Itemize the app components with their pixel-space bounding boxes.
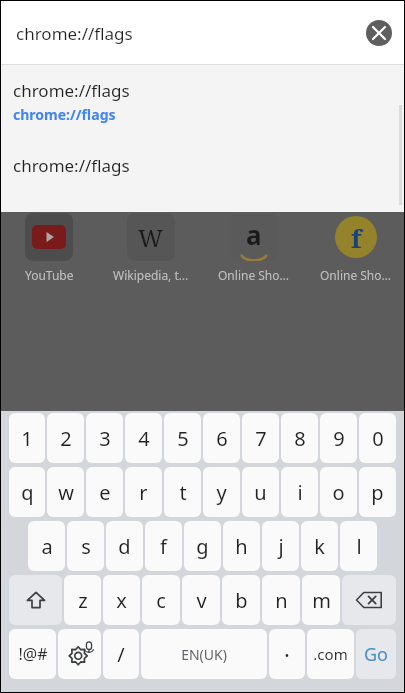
button[interactable]: s	[67, 521, 104, 571]
staticText: a	[246, 217, 262, 252]
staticText: 1	[21, 425, 33, 452]
button[interactable]: g	[184, 521, 221, 571]
button[interactable]: r	[125, 467, 162, 517]
staticText: b	[235, 587, 248, 614]
staticText: x	[116, 587, 127, 614]
staticText: 6	[216, 425, 228, 452]
staticText: !@#	[18, 643, 48, 665]
button[interactable]: w	[47, 467, 84, 517]
button[interactable]: 5	[164, 413, 201, 463]
button[interactable]: b	[222, 575, 260, 625]
button[interactable]: !@#	[9, 629, 56, 679]
staticText: c	[156, 587, 166, 614]
button[interactable]: c	[142, 575, 180, 625]
button[interactable]: 3	[86, 413, 123, 463]
button[interactable]: 0	[359, 413, 396, 463]
button[interactable]: EN(UK)	[141, 629, 267, 679]
staticText: n	[275, 587, 288, 614]
button[interactable]: y	[203, 467, 240, 517]
button[interactable]: 4	[125, 413, 162, 463]
staticText: y	[216, 479, 227, 506]
button[interactable]: o	[320, 467, 357, 517]
staticText: s	[81, 533, 91, 560]
button[interactable]: Go	[356, 629, 396, 679]
staticText: chrome://flags	[13, 154, 130, 177]
button[interactable]: Backspace	[342, 575, 396, 625]
button[interactable]: v	[182, 575, 220, 625]
staticText: h	[235, 533, 248, 560]
staticText: ·	[284, 639, 290, 669]
button[interactable]: Settings and voice input	[58, 629, 101, 679]
button[interactable]: m	[302, 575, 340, 625]
button[interactable]: chrome://flags	[1, 65, 404, 135]
staticText: a	[41, 533, 53, 560]
button[interactable]: x	[103, 575, 140, 625]
staticText: 8	[294, 425, 306, 452]
staticText: 4	[138, 425, 150, 452]
button[interactable]: 8	[281, 413, 318, 463]
staticText: w	[58, 479, 74, 506]
button[interactable]: l	[340, 521, 377, 571]
button[interactable]: /	[103, 629, 139, 679]
button[interactable]: q	[9, 467, 45, 517]
staticText: 5	[177, 425, 189, 452]
button[interactable]: e	[86, 467, 123, 517]
button[interactable]: 9	[320, 413, 357, 463]
button[interactable]: j	[262, 521, 299, 571]
button[interactable]: p	[359, 467, 396, 517]
button[interactable]: u	[242, 467, 279, 517]
staticText: t	[179, 479, 187, 506]
button[interactable]: 6	[203, 413, 240, 463]
staticText: 2	[60, 425, 72, 452]
button[interactable]: chrome://flags	[1, 135, 404, 195]
staticText: i	[297, 479, 303, 506]
staticText: YouTube	[25, 267, 74, 283]
button[interactable]: f	[145, 521, 182, 571]
button[interactable]: f	[318, 213, 394, 283]
staticText: chrome://flags	[16, 22, 133, 45]
staticText: z	[78, 587, 88, 614]
staticText: 7	[255, 425, 267, 452]
staticText: d	[118, 533, 131, 560]
staticText: airtel	[341, 659, 384, 681]
button[interactable]: t	[164, 467, 201, 517]
button[interactable]: 1	[9, 413, 45, 463]
staticText: chrome://flags	[13, 79, 130, 102]
button[interactable]: k	[301, 521, 338, 571]
button[interactable]: i	[281, 467, 318, 517]
button[interactable]: n	[262, 575, 300, 625]
staticText: Airtel vs Reliance Jio's unlimited	[13, 660, 234, 680]
button[interactable]: 2	[47, 413, 84, 463]
staticText: W	[138, 221, 164, 254]
button[interactable]: z	[64, 575, 101, 625]
staticText: j	[278, 533, 284, 560]
staticText: Online Sho…	[218, 267, 290, 283]
staticText: v	[196, 587, 207, 614]
staticText: u	[254, 479, 267, 506]
staticText: 9	[333, 425, 345, 452]
button[interactable]: 7	[242, 413, 279, 463]
button[interactable]: YouTube	[11, 213, 87, 283]
staticText: EN(UK)	[181, 645, 227, 664]
button[interactable]: .com	[307, 629, 354, 679]
button[interactable]: Airtel vs Reliance Jio's unlimited	[1, 650, 404, 690]
button[interactable]: h	[223, 521, 260, 571]
staticText: 3	[99, 425, 111, 452]
button[interactable]: a	[216, 213, 292, 283]
staticText: f	[351, 220, 362, 255]
staticText: chrome://flags	[13, 105, 116, 124]
button[interactable]: ·	[269, 629, 305, 679]
button[interactable]: a	[28, 521, 65, 571]
button[interactable]: d	[106, 521, 143, 571]
button[interactable]: Clear text	[366, 20, 392, 46]
staticText: 0	[372, 425, 384, 452]
staticText: e	[99, 479, 111, 506]
staticText: m	[312, 587, 331, 614]
staticText: o	[332, 479, 345, 506]
button[interactable]: Shift	[9, 575, 62, 625]
staticText: f	[160, 533, 167, 560]
staticText: /	[117, 641, 125, 668]
button[interactable]: W	[113, 213, 189, 283]
staticText: g	[196, 533, 209, 560]
staticText: p	[371, 479, 384, 506]
